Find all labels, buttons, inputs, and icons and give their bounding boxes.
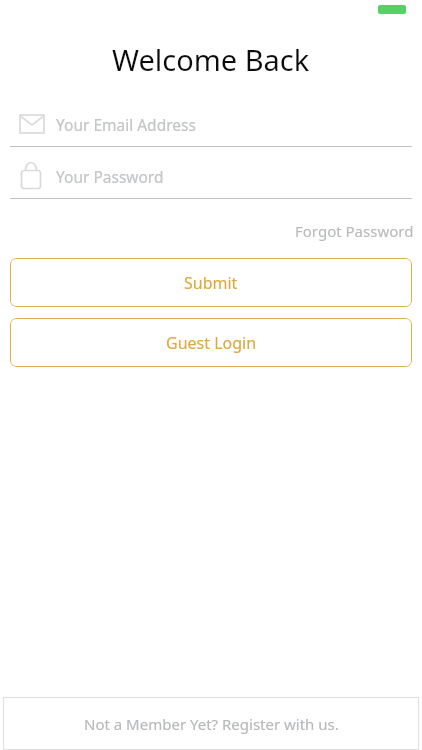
staticText: Guest Login xyxy=(166,332,257,354)
staticText: Submit xyxy=(184,272,238,294)
staticText: Not a Member Yet? Register with us. xyxy=(84,714,339,734)
button[interactable]: Forgot Password xyxy=(295,219,422,243)
staticText: Forgot Password xyxy=(295,221,414,241)
other: Email xyxy=(19,111,45,137)
button[interactable]: Submit xyxy=(10,258,412,307)
button[interactable]: Guest Login xyxy=(10,318,412,367)
button[interactable]: Password xyxy=(0,154,422,199)
button[interactable]: Email xyxy=(0,102,422,147)
staticText: Your Email Address xyxy=(56,114,196,135)
other: Password xyxy=(19,163,45,189)
staticText: Your Password xyxy=(56,166,164,187)
staticText: Welcome Back xyxy=(112,40,310,79)
button[interactable]: Not a Member Yet? Register with us. xyxy=(3,697,419,750)
